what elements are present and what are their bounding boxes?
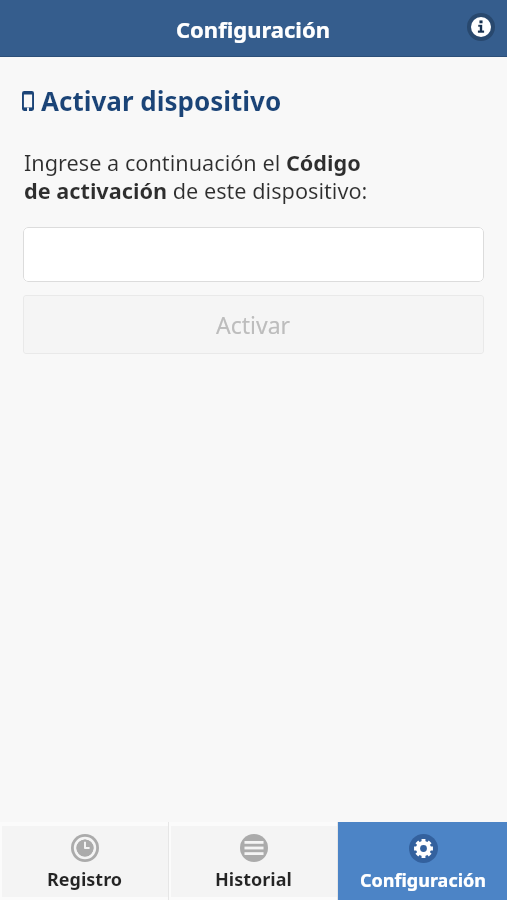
button[interactable]: Información: [464, 10, 498, 44]
staticText: Configuración: [176, 14, 331, 44]
staticText: Activar dispositivo: [41, 83, 282, 118]
staticText: Ingrese a continuación el Código de acti…: [24, 148, 389, 205]
button[interactable]: Registro: [0, 822, 169, 900]
staticText: Registro: [47, 867, 123, 892]
button[interactable]: Código de activación: [23, 227, 484, 282]
staticText: Activar: [216, 309, 291, 340]
button[interactable]: Activar: [23, 295, 484, 354]
button[interactable]: Configuración: [338, 822, 507, 900]
staticText: Historial: [215, 867, 292, 892]
button[interactable]: Historial: [169, 822, 338, 900]
staticText: Configuración: [360, 868, 486, 893]
